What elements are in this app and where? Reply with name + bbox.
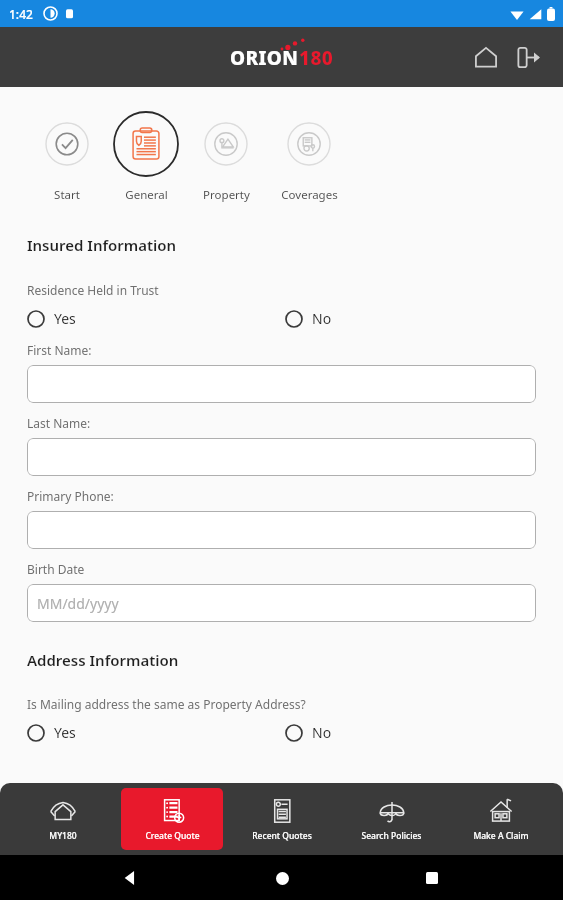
- button[interactable]: Yes: [27, 723, 285, 742]
- staticText: Property: [203, 187, 250, 203]
- staticText: Is Mailing address the same as Property …: [27, 696, 306, 712]
- staticText: No: [312, 723, 332, 742]
- staticText: Primary Phone:: [27, 488, 114, 504]
- staticText: 1:42: [9, 6, 33, 22]
- button[interactable]: General: [106, 111, 186, 203]
- staticText: Yes: [54, 723, 76, 742]
- button[interactable]: Property: [186, 111, 266, 203]
- staticText: First Name:: [27, 342, 92, 358]
- staticText: Search Policies: [361, 830, 422, 842]
- button[interactable]: MM/dd/yyyy: [27, 584, 536, 622]
- staticText: Last Name:: [27, 415, 91, 431]
- staticText: Coverages: [281, 187, 338, 203]
- staticText: Yes: [54, 309, 76, 328]
- staticText: Birth Date: [27, 561, 85, 577]
- button[interactable]: Create Quote: [121, 788, 223, 850]
- button[interactable]: Home: [262, 858, 302, 898]
- staticText: MM/dd/yyyy: [37, 594, 119, 613]
- button[interactable]: Start: [28, 111, 106, 203]
- staticText: No: [312, 309, 332, 328]
- staticText: 180: [299, 45, 334, 71]
- staticText: MY180: [49, 830, 77, 842]
- button[interactable]: Coverages: [266, 111, 352, 203]
- button[interactable]: MY180: [12, 788, 114, 850]
- button[interactable]: Home: [469, 40, 503, 74]
- staticText: ORION: [230, 45, 299, 71]
- staticText: Create Quote: [145, 830, 200, 842]
- button[interactable]: [27, 438, 536, 476]
- button[interactable]: No: [285, 723, 332, 742]
- button[interactable]: [27, 511, 536, 549]
- button[interactable]: Yes: [27, 309, 285, 328]
- button[interactable]: Back: [111, 858, 151, 898]
- staticText: Residence Held in Trust: [27, 282, 159, 298]
- button[interactable]: Search Policies: [340, 788, 442, 850]
- staticText: Start: [54, 187, 80, 203]
- button[interactable]: [27, 365, 536, 403]
- staticText: Insured Information: [27, 235, 177, 255]
- staticText: Address Information: [27, 650, 179, 670]
- button[interactable]: Log out: [511, 40, 545, 74]
- button[interactable]: Make A Claim: [450, 788, 552, 850]
- button[interactable]: Recent apps: [412, 858, 452, 898]
- button[interactable]: Recent Quotes: [231, 788, 333, 850]
- staticText: Recent Quotes: [252, 830, 312, 842]
- button[interactable]: No: [285, 309, 332, 328]
- staticText: General: [125, 187, 168, 203]
- staticText: Make A Claim: [473, 830, 529, 842]
